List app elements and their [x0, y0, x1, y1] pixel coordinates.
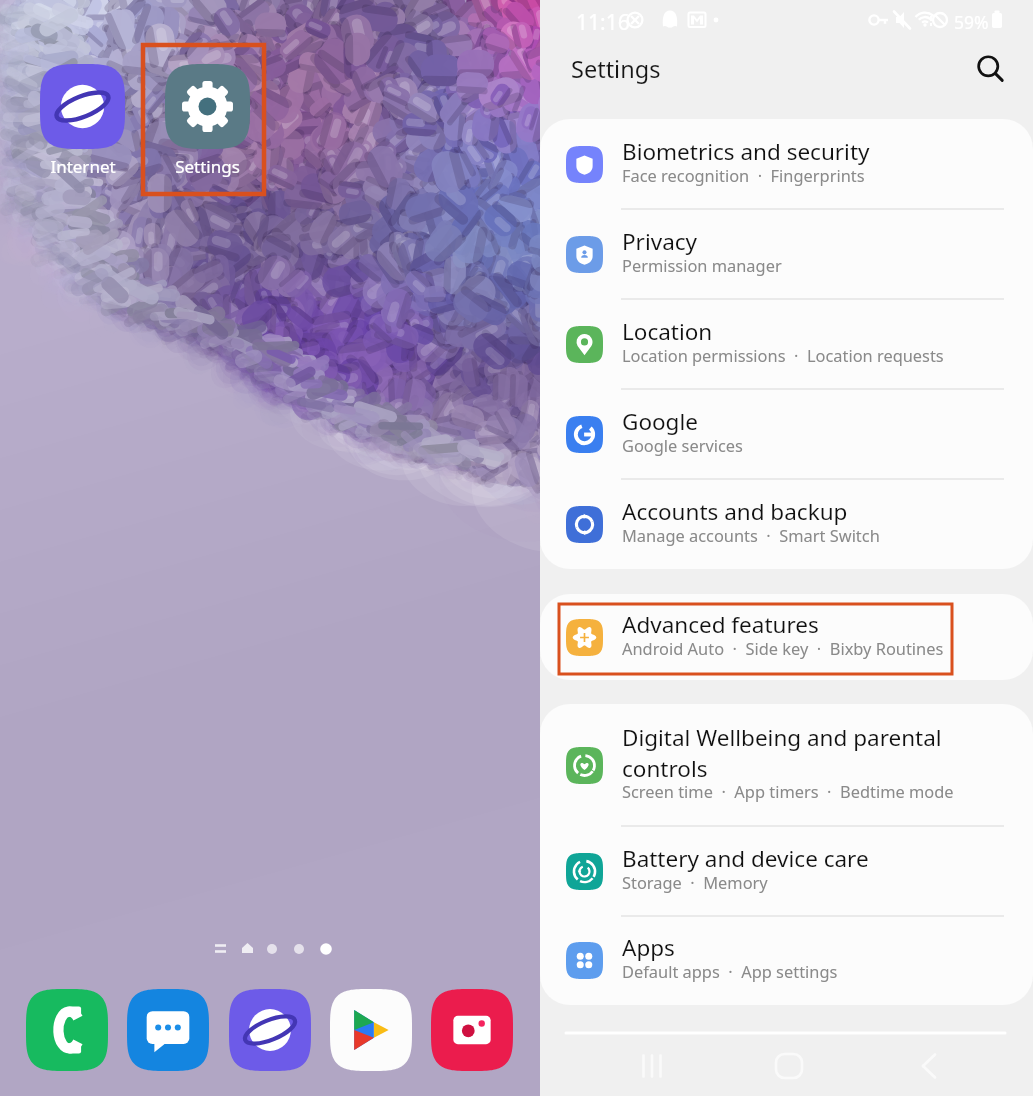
staticText: Privacy	[622, 226, 698, 257]
button[interactable]: App	[229, 989, 311, 1071]
staticText: Apps	[622, 932, 675, 963]
staticText: Battery and device care	[622, 843, 869, 874]
button[interactable]: App	[431, 989, 513, 1071]
button[interactable]: Privacy	[540, 209, 1033, 299]
staticText: Storage · Memory	[622, 871, 768, 893]
button[interactable]: App	[26, 989, 108, 1071]
staticText: Internet	[50, 155, 116, 178]
staticText: Android Auto · Side key · Bixby Routines	[622, 637, 944, 659]
staticText: Digital Wellbeing and parental controls	[622, 722, 1007, 783]
staticText: Advanced features	[622, 609, 819, 640]
button[interactable]: App	[330, 989, 412, 1071]
staticText: Face recognition · Fingerprints	[622, 164, 865, 186]
button[interactable]: Internet	[40, 64, 125, 178]
button[interactable]: Accounts and backup	[540, 479, 1033, 569]
button[interactable]: Search	[968, 47, 1012, 91]
staticText: 59%	[954, 10, 989, 34]
staticText: 11:16	[576, 8, 630, 37]
button[interactable]: Location	[540, 299, 1033, 389]
staticText: Screen time · App timers · Bedtime mode	[622, 780, 954, 802]
button[interactable]: Advanced features	[540, 594, 1033, 680]
staticText: Biometrics and security	[622, 136, 870, 167]
staticText: Google	[622, 406, 698, 437]
staticText: Accounts and backup	[622, 496, 848, 527]
staticText: Manage accounts · Smart Switch	[622, 524, 880, 546]
staticText: Permission manager	[622, 254, 782, 276]
staticText: Location	[622, 316, 713, 347]
staticText: Default apps · App settings	[622, 960, 838, 982]
button[interactable]: Biometrics and security	[540, 119, 1033, 209]
button[interactable]: Apps	[540, 916, 1033, 1005]
staticText: Settings	[571, 53, 661, 85]
button[interactable]: Settings	[165, 64, 250, 178]
button[interactable]: App	[127, 989, 209, 1071]
staticText: Google services	[622, 434, 743, 456]
staticText: Location permissions · Location requests	[622, 344, 944, 366]
button[interactable]: Google	[540, 389, 1033, 479]
staticText: Settings	[175, 155, 240, 178]
button[interactable]: Battery and device care	[540, 826, 1033, 916]
button[interactable]: Digital Wellbeing and parental controls	[540, 704, 1033, 826]
